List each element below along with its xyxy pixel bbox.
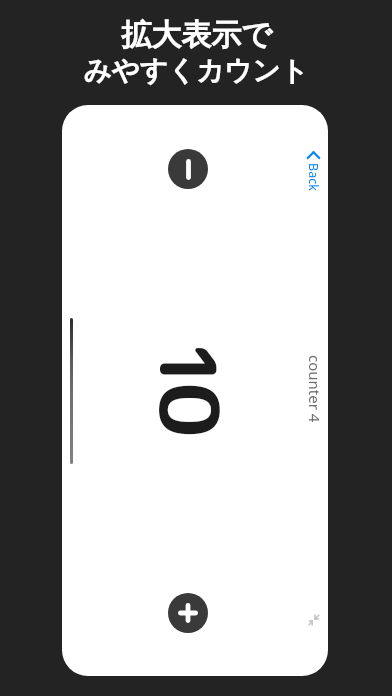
button[interactable]: Counter value 10	[122, 327, 242, 447]
staticText: 拡大表示で	[121, 16, 272, 54]
button[interactable]: Increment	[168, 593, 208, 633]
staticText: みやすくカウント	[83, 54, 309, 89]
staticText: 0	[134, 382, 247, 438]
staticText: counter 4	[305, 355, 325, 423]
staticText: 1	[135, 340, 244, 390]
staticText: Back	[305, 163, 322, 191]
button[interactable]: Exit full screen	[300, 606, 328, 634]
button[interactable]: Back	[299, 140, 327, 202]
button[interactable]: Decrement	[168, 149, 208, 189]
